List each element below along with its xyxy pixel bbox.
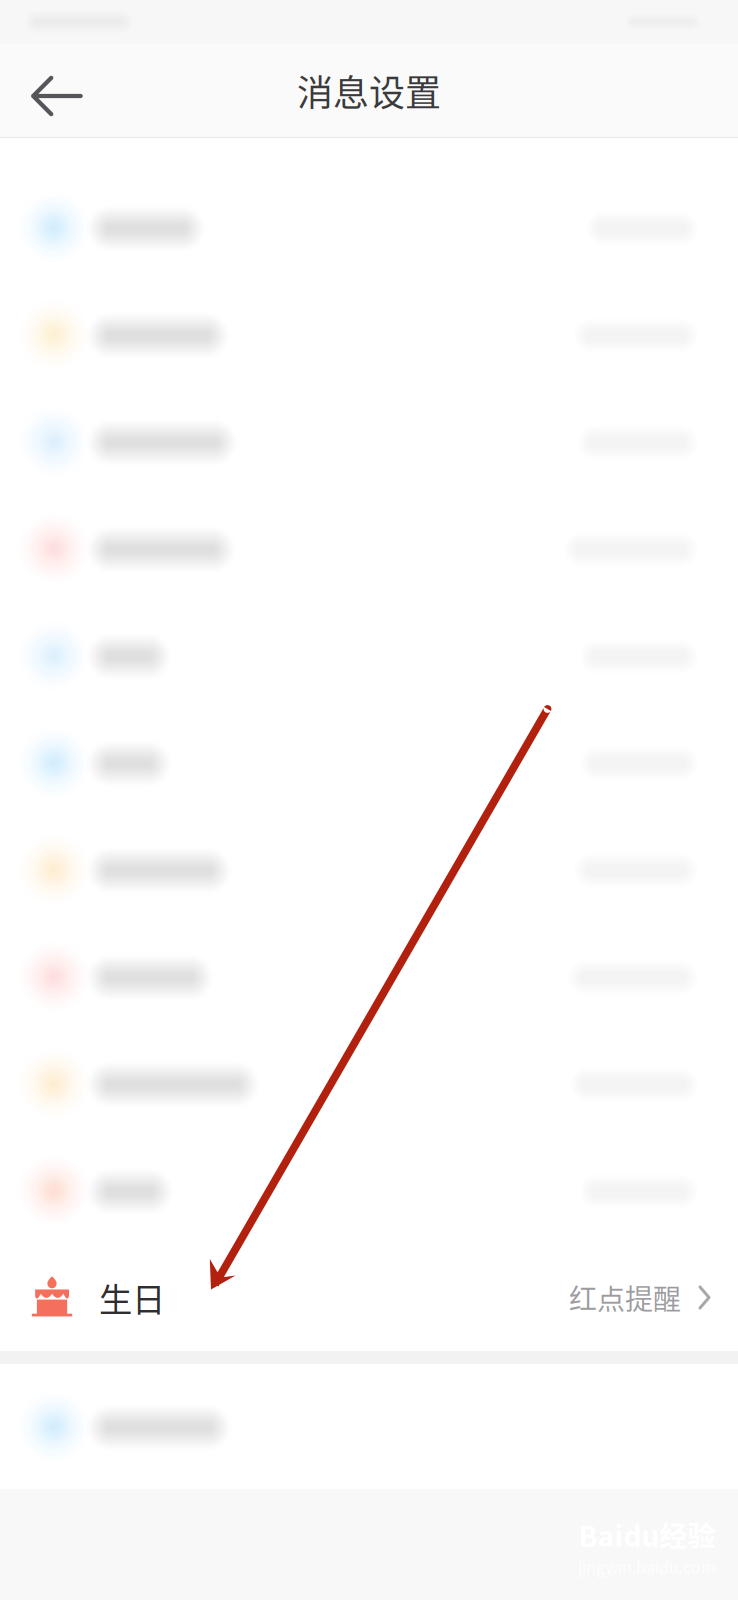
- button[interactable]: [0, 1364, 738, 1489]
- button[interactable]: 返回: [0, 44, 110, 137]
- button[interactable]: [0, 1137, 738, 1244]
- button[interactable]: [0, 174, 738, 281]
- button[interactable]: [0, 281, 738, 388]
- button[interactable]: [0, 388, 738, 495]
- staticText: 红点提醒: [569, 1277, 681, 1318]
- button[interactable]: [0, 602, 738, 709]
- button[interactable]: [0, 1030, 738, 1137]
- button[interactable]: [0, 816, 738, 923]
- button[interactable]: [0, 709, 738, 816]
- button[interactable]: [0, 495, 738, 602]
- staticText: 生日: [99, 1273, 165, 1322]
- button[interactable]: [0, 923, 738, 1030]
- button[interactable]: 生日: [0, 1244, 738, 1351]
- staticText: 消息设置: [297, 64, 441, 116]
